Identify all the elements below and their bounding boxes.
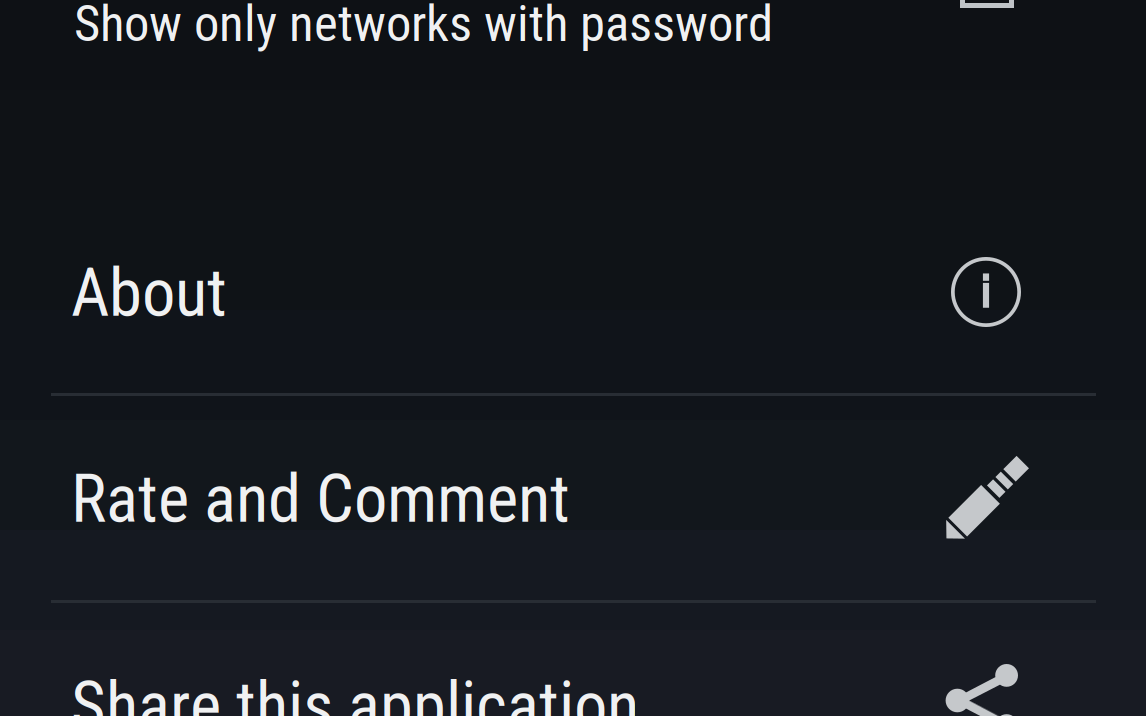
staticText: Share this application [71,667,639,716]
staticText: Show only networks with password [74,0,773,53]
staticText: Rate and Comment [71,460,570,538]
staticText: About [71,254,227,332]
button[interactable]: Share this application [0,601,1146,716]
button[interactable]: About [0,187,1146,394]
button[interactable]: Rate and Comment [0,394,1146,601]
button[interactable]: Show only networks with password [0,0,1146,64]
